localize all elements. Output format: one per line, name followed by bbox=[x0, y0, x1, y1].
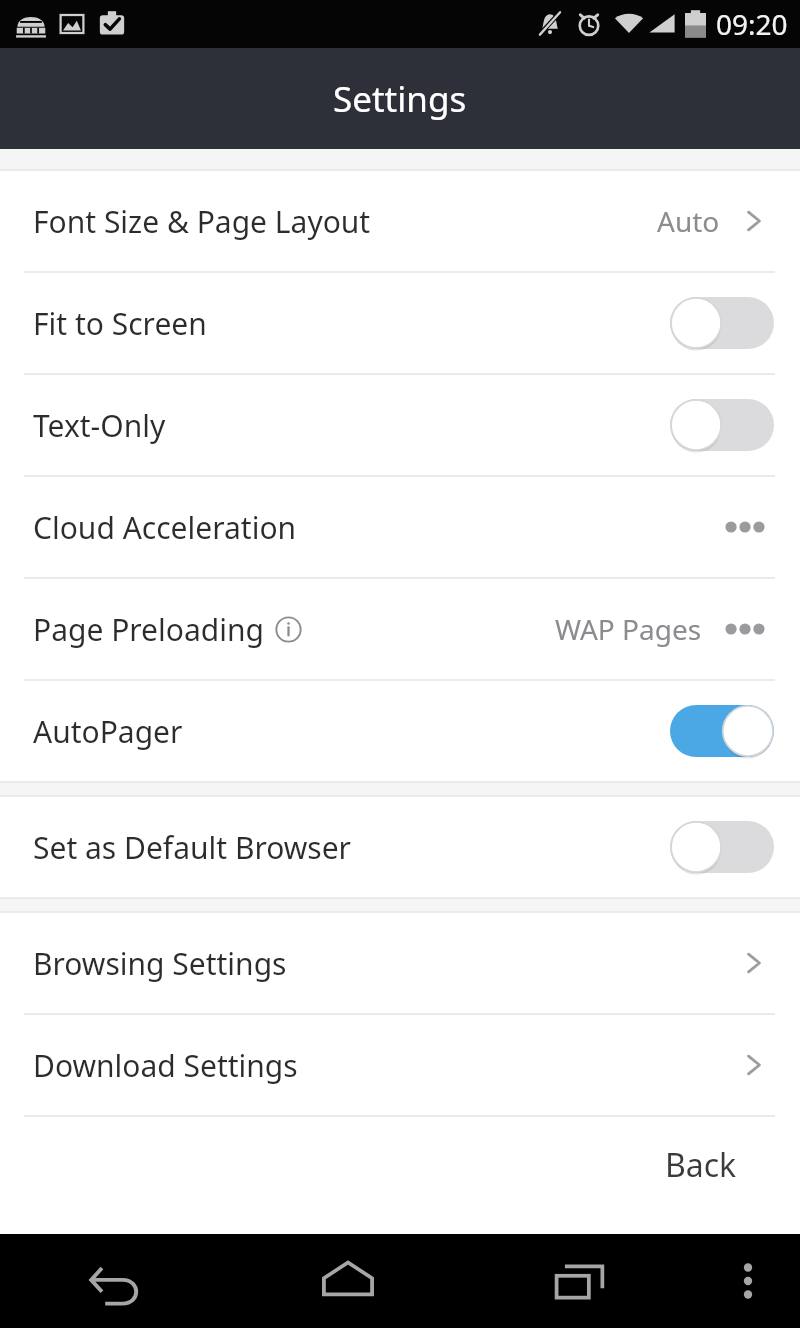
staticText: Text-Only bbox=[33, 405, 166, 446]
button[interactable]: Back bbox=[0, 1117, 800, 1213]
button[interactable]: Back bbox=[0, 1234, 232, 1328]
staticText: Auto bbox=[657, 202, 720, 240]
button[interactable]: Switch off bbox=[668, 292, 776, 354]
button[interactable]: Open bbox=[732, 1039, 776, 1091]
button[interactable]: AutoPager bbox=[0, 681, 800, 781]
staticText: Font Size & Page Layout bbox=[33, 201, 371, 242]
staticText: Browsing Settings bbox=[33, 943, 287, 984]
button[interactable]: Browsing Settings bbox=[0, 913, 800, 1013]
button[interactable]: More options bbox=[714, 501, 776, 553]
button[interactable]: Cloud Acceleration bbox=[0, 477, 800, 577]
button[interactable]: Switch off bbox=[668, 394, 776, 456]
staticText: WAP Pages bbox=[555, 610, 702, 648]
staticText: Fit to Screen bbox=[33, 303, 207, 344]
button[interactable]: Set as Default Browser bbox=[0, 797, 800, 897]
button[interactable]: Download Settings bbox=[0, 1015, 800, 1115]
button[interactable]: Text-Only bbox=[0, 375, 800, 475]
button[interactable]: Home bbox=[232, 1234, 464, 1328]
staticText: AutoPager bbox=[33, 711, 183, 752]
button[interactable]: Switch off bbox=[668, 816, 776, 878]
button[interactable]: Recent apps bbox=[464, 1234, 696, 1328]
button[interactable]: Page Preloading bbox=[0, 579, 800, 679]
button[interactable]: Fit to Screen bbox=[0, 273, 800, 373]
staticText: 09:20 bbox=[716, 5, 788, 43]
staticText: Download Settings bbox=[33, 1045, 298, 1086]
button[interactable]: More options bbox=[714, 603, 776, 655]
button[interactable]: Open bbox=[732, 937, 776, 989]
staticText: Page Preloading bbox=[33, 609, 264, 650]
staticText: Cloud Acceleration bbox=[33, 507, 297, 548]
button[interactable]: Switch on bbox=[668, 700, 776, 762]
button[interactable]: Font Size & Page Layout bbox=[0, 171, 800, 271]
staticText: Set as Default Browser bbox=[33, 827, 351, 868]
staticText: Back bbox=[665, 1143, 737, 1187]
button[interactable]: Open bbox=[732, 195, 776, 247]
staticText: Settings bbox=[333, 75, 467, 123]
button[interactable]: More options bbox=[696, 1234, 800, 1328]
